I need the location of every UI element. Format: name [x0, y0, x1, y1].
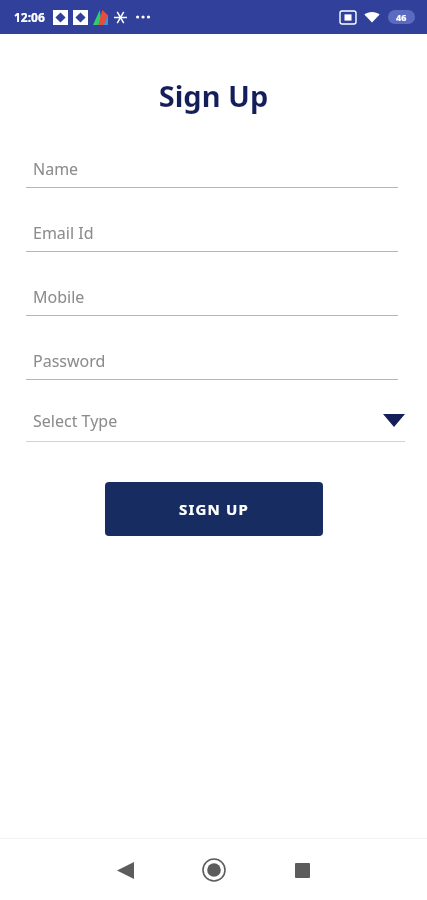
- staticText: Sign Up: [0, 76, 427, 115]
- button[interactable]: Name: [26, 158, 398, 188]
- staticText: Mobile: [33, 286, 85, 308]
- button[interactable]: Password: [26, 350, 398, 380]
- button[interactable]: Mobile: [26, 286, 398, 316]
- staticText: 12:06: [14, 9, 45, 25]
- staticText: SIGN UP: [179, 499, 250, 519]
- button[interactable]: SIGN UP: [105, 482, 323, 536]
- button[interactable]: Home: [194, 850, 234, 890]
- staticText: Password: [33, 350, 106, 372]
- staticText: 46: [396, 11, 407, 23]
- button[interactable]: Back: [106, 851, 144, 889]
- button[interactable]: Recent apps: [283, 851, 321, 889]
- staticText: Name: [33, 158, 79, 180]
- staticText: Select Type: [33, 410, 383, 432]
- button[interactable]: Select Type dropdown: [26, 410, 405, 442]
- button[interactable]: Email Id: [26, 222, 398, 252]
- staticText: Email Id: [33, 222, 94, 244]
